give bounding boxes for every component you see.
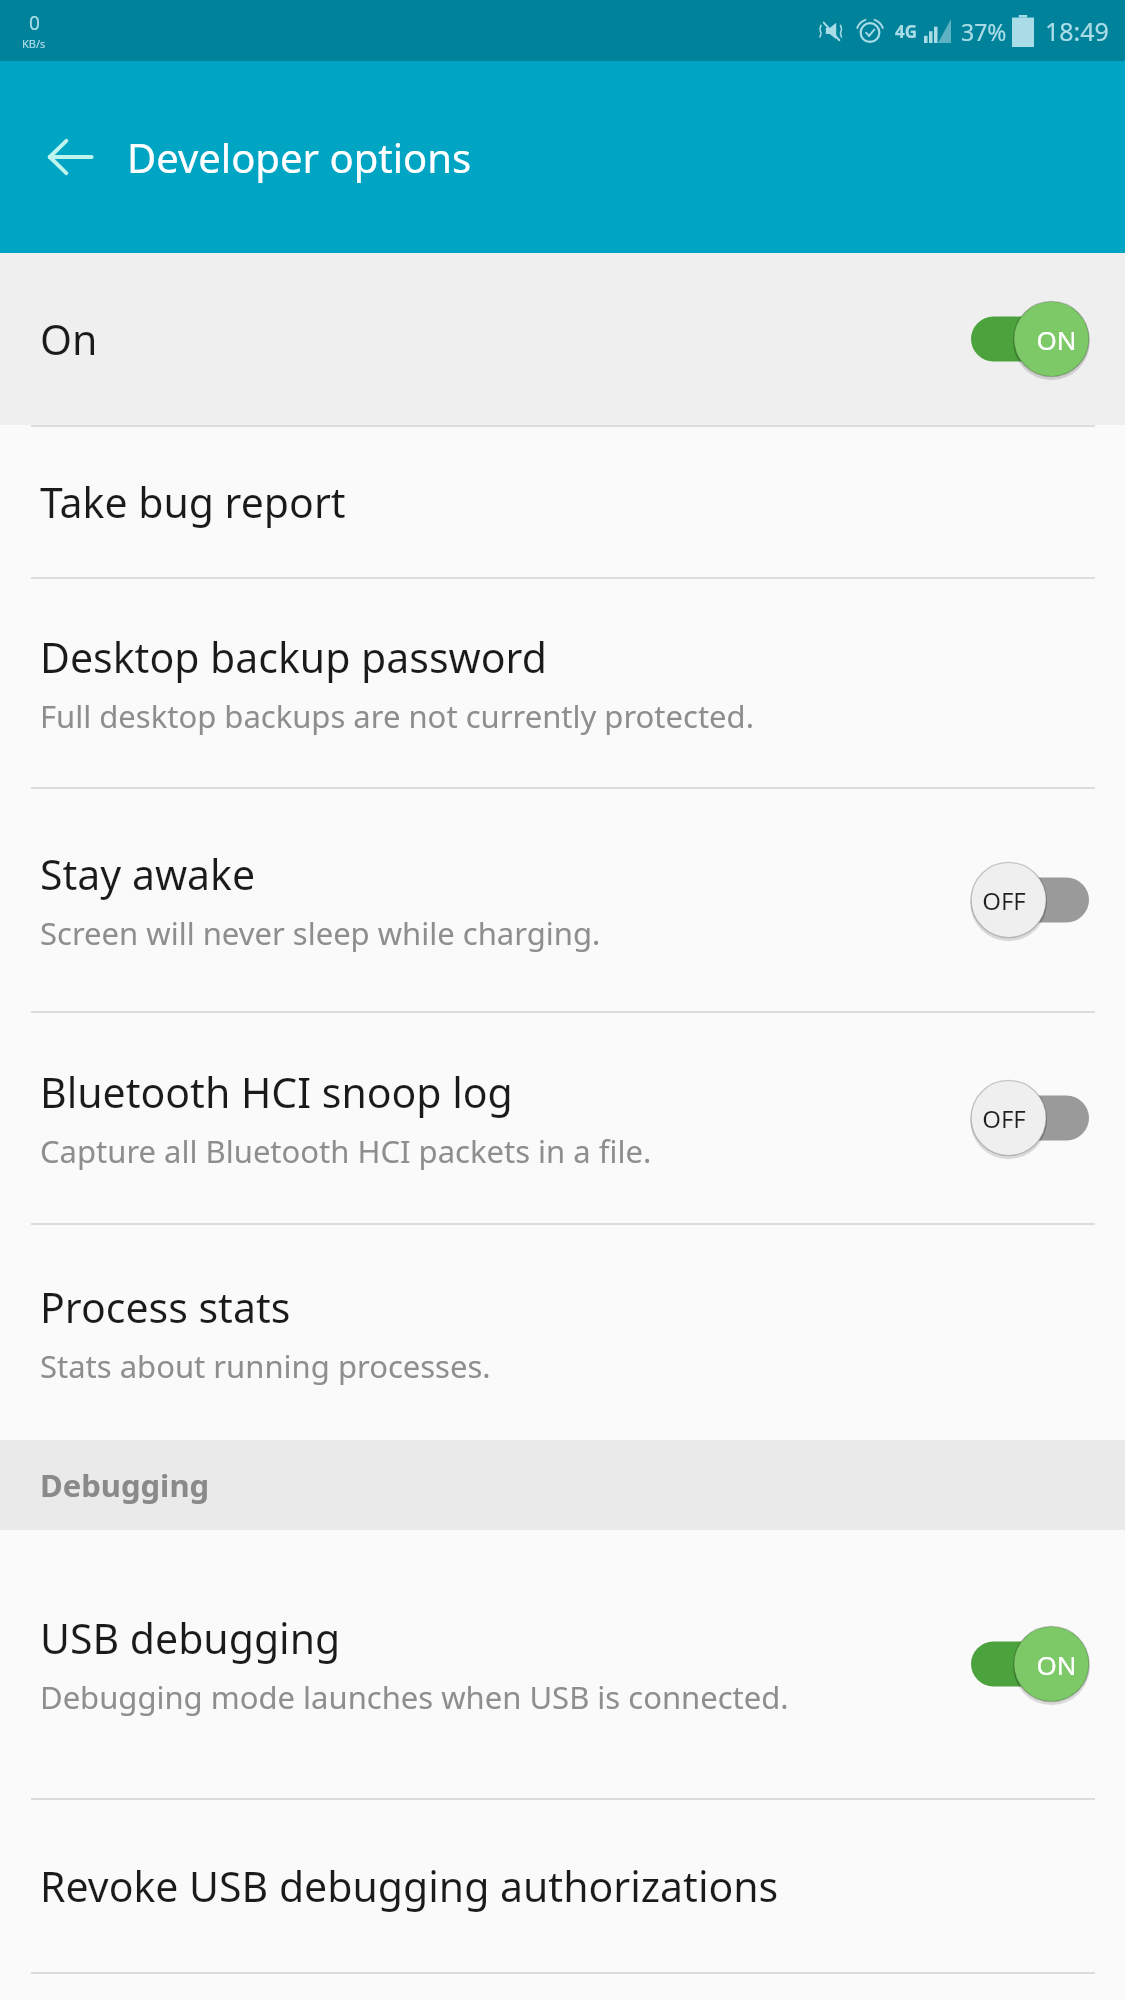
staticText: OFF [982,884,1026,917]
staticText: OFF [982,1102,1026,1135]
staticText: Process stats [40,1279,291,1335]
button[interactable]: Switch off [971,860,1089,940]
staticText: Take bug report [40,474,346,530]
button[interactable]: On [0,253,1125,425]
staticText: Bluetooth HCI snoop log [40,1064,513,1120]
staticText: Debugging mode launches when USB is conn… [40,1676,789,1718]
staticText: 37% [961,16,1007,47]
button[interactable]: Desktop backup password [0,579,1125,787]
staticText: Full desktop backups are not currently p… [40,695,754,737]
button[interactable]: Switch on [971,1624,1089,1704]
staticText: Stats about running processes. [40,1345,491,1387]
button[interactable]: Process stats [0,1225,1125,1440]
button[interactable]: Bluetooth HCI snoop log [0,1013,1125,1223]
button[interactable]: Switch on [971,299,1089,379]
button[interactable]: Navigate up [28,115,112,199]
staticText: 4G [895,20,918,43]
button[interactable]: USB debugging [0,1530,1125,1798]
staticText: On [40,311,98,367]
staticText: Stay awake [40,846,256,902]
staticText: Revoke USB debugging authorizations [40,1858,779,1914]
button[interactable]: Stay awake [0,789,1125,1011]
staticText: Capture all Bluetooth HCI packets in a f… [40,1130,652,1172]
staticText: Developer options [127,130,472,184]
button[interactable]: Take bug report [0,427,1125,577]
button[interactable]: Switch off [971,1078,1089,1158]
staticText: KB/s [22,36,46,51]
staticText: Desktop backup password [40,629,547,685]
staticText: Debugging [40,1464,210,1506]
staticText: USB debugging [40,1610,341,1666]
staticText: ON [1036,1647,1077,1682]
staticText: ON [1036,322,1077,357]
staticText: 0 [29,10,40,36]
button[interactable]: Revoke USB debugging authorizations [0,1800,1125,1972]
staticText: Screen will never sleep while charging. [40,912,601,954]
staticText: 18:49 [1045,14,1109,48]
